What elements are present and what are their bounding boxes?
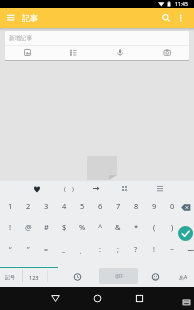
staticText: ~ xyxy=(170,245,175,255)
button[interactable]: ( xyxy=(56,181,74,197)
staticText: ^ xyxy=(98,222,103,232)
button[interactable] xyxy=(30,182,44,195)
button[interactable]: ) xyxy=(163,219,181,235)
staticText: 5 xyxy=(80,201,85,211)
button[interactable]: “ xyxy=(1,242,19,258)
staticText: ” xyxy=(27,245,30,255)
button[interactable]: 3 xyxy=(37,198,55,214)
staticText: 123 xyxy=(29,274,39,281)
staticText: あA xyxy=(179,274,188,281)
staticText: ? xyxy=(134,245,138,255)
button[interactable]: ) xyxy=(64,181,82,197)
button[interactable]: _ xyxy=(55,242,73,258)
button[interactable]: 7 xyxy=(109,198,127,214)
staticText: ー xyxy=(187,246,194,255)
button[interactable] xyxy=(174,11,188,25)
staticText: ; xyxy=(117,245,119,255)
button[interactable] xyxy=(148,270,163,284)
button[interactable]: = xyxy=(37,242,55,258)
button[interactable]: ” xyxy=(19,242,37,258)
button[interactable]: ! xyxy=(1,219,19,235)
staticText: 記号 xyxy=(5,274,15,280)
button[interactable]: ! xyxy=(145,242,163,258)
button[interactable]: 5 xyxy=(73,198,91,214)
staticText: 3 xyxy=(44,201,49,211)
button[interactable]: ^ xyxy=(91,219,109,235)
staticText: ) xyxy=(72,185,74,193)
staticText: 8 xyxy=(134,201,139,211)
staticText: * xyxy=(134,222,139,232)
button[interactable]: 8 xyxy=(127,198,145,214)
staticText: & xyxy=(115,222,121,232)
staticText: @ xyxy=(25,222,32,232)
staticText: 記事 xyxy=(22,13,38,23)
button[interactable] xyxy=(179,296,194,309)
button[interactable]: : xyxy=(91,242,109,258)
staticText: “ xyxy=(9,245,12,255)
button[interactable] xyxy=(130,289,149,308)
staticText: $ xyxy=(62,222,67,232)
staticText: ) xyxy=(171,222,174,232)
button[interactable]: ; xyxy=(109,242,127,258)
button[interactable] xyxy=(88,289,107,308)
button[interactable]: 9 xyxy=(145,198,163,214)
button[interactable]: * xyxy=(127,219,145,235)
button[interactable]: ? xyxy=(127,242,145,258)
button[interactable]: ~ xyxy=(163,242,181,258)
button[interactable]: 123 xyxy=(24,269,44,285)
staticText: # xyxy=(44,222,49,232)
staticText: 1 xyxy=(8,201,13,211)
button[interactable]: 6 xyxy=(91,198,109,214)
staticText: ! xyxy=(153,245,155,255)
staticText: 9 xyxy=(152,201,157,211)
staticText: 、 xyxy=(79,246,86,255)
staticText: 2 xyxy=(26,201,31,211)
staticText: ( xyxy=(153,222,156,232)
button[interactable]: & xyxy=(109,219,127,235)
button[interactable]: # xyxy=(37,219,55,235)
staticText: = xyxy=(44,245,49,255)
button[interactable]: 0 xyxy=(163,198,181,214)
button[interactable]: あA xyxy=(173,269,193,285)
staticText: 新增記事 xyxy=(9,34,33,41)
staticText: 7 xyxy=(116,201,121,211)
button[interactable]: 、 xyxy=(73,242,91,258)
staticText: _ xyxy=(62,245,66,255)
button[interactable]: 2 xyxy=(19,198,37,214)
staticText: 0 xyxy=(170,201,175,211)
button[interactable]: @IF xyxy=(99,268,138,284)
button[interactable]: ( xyxy=(145,219,163,235)
staticText: 11:45 xyxy=(175,1,188,8)
button[interactable]: 記号 xyxy=(0,269,20,285)
button[interactable] xyxy=(5,31,189,60)
staticText: 4 xyxy=(62,201,67,211)
button[interactable]: 4 xyxy=(55,198,73,214)
button[interactable] xyxy=(177,200,194,215)
staticText: ! xyxy=(9,222,12,232)
button[interactable] xyxy=(3,11,17,25)
staticText: % xyxy=(79,222,86,232)
staticText: : xyxy=(99,245,101,255)
button[interactable]: $ xyxy=(55,219,73,235)
button[interactable]: ー xyxy=(181,242,194,258)
staticText: @IF xyxy=(115,273,123,279)
staticText: ( xyxy=(64,185,66,193)
button[interactable]: % xyxy=(73,219,91,235)
button[interactable] xyxy=(46,289,65,308)
button[interactable] xyxy=(159,11,173,25)
button[interactable] xyxy=(89,182,103,195)
button[interactable]: 1 xyxy=(1,198,19,214)
button[interactable] xyxy=(178,226,193,241)
button[interactable]: @ xyxy=(19,219,37,235)
button[interactable] xyxy=(70,270,85,284)
staticText: 6 xyxy=(98,201,103,211)
